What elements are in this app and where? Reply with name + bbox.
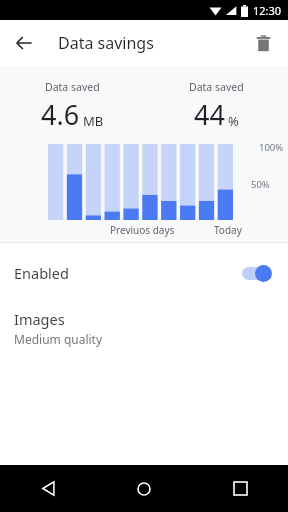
staticText: 50% [251, 178, 270, 191]
staticText: Data saved [189, 80, 244, 94]
staticText: 12:30 [253, 3, 282, 18]
button[interactable]: Back [4, 23, 44, 63]
staticText: 100% [259, 141, 284, 154]
button[interactable]: Recent apps [192, 465, 288, 512]
staticText: Previuos days [110, 223, 175, 237]
staticText: 4.6 [41, 96, 80, 133]
button[interactable]: Enabled toggle [240, 263, 274, 283]
button[interactable]: Delete [244, 24, 282, 62]
button[interactable]: Images [0, 303, 288, 361]
staticText: Medium quality [14, 331, 103, 347]
staticText: Images [14, 309, 65, 329]
button[interactable]: Back [0, 465, 96, 512]
staticText: Data savings [58, 32, 154, 54]
button[interactable]: Home [96, 465, 192, 512]
button[interactable]: Enabled [0, 243, 288, 303]
staticText: Enabled [14, 263, 240, 283]
staticText: % [228, 112, 239, 130]
staticText: 44 [194, 96, 225, 133]
staticText: Data saved [45, 80, 100, 94]
staticText: Today [214, 223, 242, 237]
staticText: MB [83, 112, 104, 130]
